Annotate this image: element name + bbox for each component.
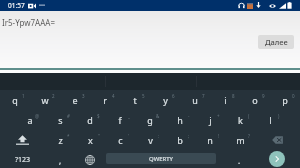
staticText: 7 bbox=[202, 93, 205, 99]
staticText: c bbox=[118, 134, 123, 146]
staticText: g bbox=[147, 114, 153, 126]
staticText: @ bbox=[35, 113, 40, 119]
staticText: 5 bbox=[142, 93, 145, 99]
staticText: t bbox=[133, 94, 137, 106]
staticText: d bbox=[87, 114, 93, 126]
button[interactable]: q bbox=[0, 90, 30, 110]
button[interactable]: r bbox=[90, 90, 120, 110]
staticText: ! bbox=[218, 133, 220, 139]
button[interactable]: j bbox=[195, 110, 225, 130]
staticText: QWERTY bbox=[149, 155, 174, 163]
staticText: h bbox=[177, 114, 183, 126]
button[interactable]: Shift bbox=[0, 130, 45, 150]
button[interactable]: g bbox=[135, 110, 165, 130]
staticText: # bbox=[67, 113, 70, 119]
staticText: u bbox=[192, 94, 198, 106]
staticText: a bbox=[27, 114, 33, 126]
button[interactable]: x bbox=[75, 130, 105, 150]
staticText: p bbox=[282, 94, 288, 106]
button[interactable]: u bbox=[180, 90, 210, 110]
button[interactable]: Далее bbox=[258, 35, 294, 49]
button[interactable]: p bbox=[270, 90, 300, 110]
staticText: z bbox=[58, 134, 63, 146]
button[interactable]: Enter bbox=[269, 151, 285, 167]
staticText: 1 bbox=[22, 93, 25, 99]
staticText: q bbox=[12, 94, 18, 106]
button[interactable]: b bbox=[165, 130, 195, 150]
button[interactable]: . bbox=[224, 150, 254, 168]
staticText: ( bbox=[248, 113, 250, 119]
button[interactable]: QWERTY bbox=[106, 153, 216, 164]
staticText: , bbox=[59, 155, 62, 166]
staticText: . bbox=[238, 155, 241, 166]
staticText: ) bbox=[278, 113, 280, 119]
staticText: 0 bbox=[292, 93, 295, 99]
button[interactable]: t bbox=[120, 90, 150, 110]
staticText: 4 bbox=[112, 93, 115, 99]
staticText: w bbox=[41, 94, 49, 106]
staticText: ' bbox=[128, 133, 130, 139]
staticText: i bbox=[224, 94, 227, 106]
staticText: o bbox=[252, 94, 258, 106]
button[interactable]: h bbox=[165, 110, 195, 130]
staticText: j bbox=[209, 114, 212, 126]
staticText: r bbox=[103, 94, 107, 106]
staticText: s bbox=[58, 114, 63, 126]
button[interactable]: Change language bbox=[74, 150, 106, 168]
button[interactable]: n bbox=[195, 130, 225, 150]
staticText: b bbox=[177, 134, 183, 146]
staticText: e bbox=[72, 94, 78, 106]
staticText: y bbox=[163, 94, 168, 106]
button[interactable]: k bbox=[225, 110, 255, 130]
staticText: & bbox=[156, 113, 160, 119]
staticText: 2 bbox=[52, 93, 55, 99]
staticText: 6 bbox=[172, 93, 175, 99]
button[interactable]: , bbox=[46, 150, 74, 168]
button[interactable]: z bbox=[45, 130, 75, 150]
staticText: 9 bbox=[262, 93, 265, 99]
button[interactable]: ?123 bbox=[0, 150, 46, 168]
button[interactable]: Backspace bbox=[255, 130, 300, 150]
button[interactable]: l bbox=[255, 110, 285, 130]
button[interactable]: s bbox=[45, 110, 75, 130]
button[interactable]: c bbox=[105, 130, 135, 150]
staticText: 01:57 bbox=[8, 1, 25, 10]
staticText: ? bbox=[248, 133, 250, 139]
staticText: x bbox=[88, 134, 93, 146]
button[interactable]: o bbox=[240, 90, 270, 110]
staticText: 3 bbox=[82, 93, 85, 99]
button[interactable]: w bbox=[30, 90, 60, 110]
staticText: + bbox=[217, 113, 220, 119]
button[interactable]: f bbox=[105, 110, 135, 130]
staticText: n bbox=[207, 134, 213, 146]
staticText: $ bbox=[97, 113, 100, 119]
staticText: : bbox=[158, 133, 160, 139]
staticText: m bbox=[236, 134, 245, 146]
staticText: Далее bbox=[265, 37, 288, 47]
button[interactable]: d bbox=[75, 110, 105, 130]
staticText: - bbox=[188, 113, 190, 119]
staticText: " bbox=[98, 133, 100, 139]
button[interactable]: e bbox=[60, 90, 90, 110]
button[interactable]: i bbox=[210, 90, 240, 110]
button[interactable]: a bbox=[15, 110, 45, 130]
staticText: Ir5-Ypw7AAA= bbox=[2, 17, 55, 28]
staticText: v bbox=[148, 134, 153, 146]
staticText: * bbox=[67, 133, 70, 139]
button[interactable]: y bbox=[150, 90, 180, 110]
staticText: 8 bbox=[232, 93, 235, 99]
staticText: k bbox=[238, 114, 243, 126]
staticText: l bbox=[269, 114, 272, 126]
staticText: _ bbox=[128, 113, 130, 119]
staticText: ?123 bbox=[15, 155, 31, 165]
staticText: ; bbox=[188, 133, 190, 139]
staticText: f bbox=[118, 114, 122, 126]
button[interactable]: v bbox=[135, 130, 165, 150]
button[interactable]: m bbox=[225, 130, 255, 150]
